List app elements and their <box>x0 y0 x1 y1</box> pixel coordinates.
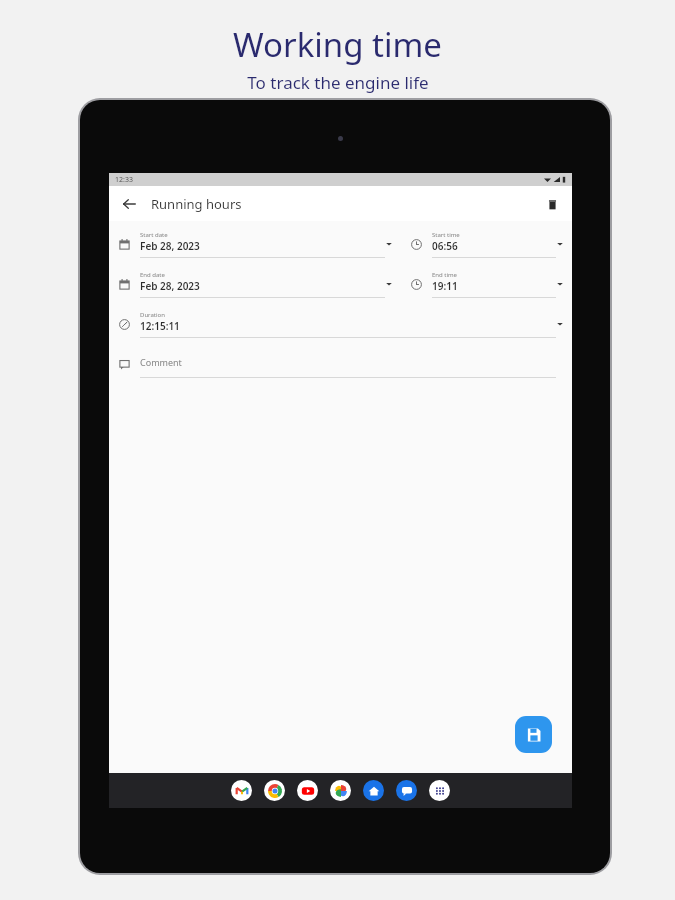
staticText: Duration <box>140 311 165 319</box>
button[interactable]: App 2 <box>297 780 318 801</box>
staticText: Feb 28, 2023 <box>140 279 200 293</box>
button[interactable]: End date <box>109 267 401 301</box>
button[interactable]: App 1 <box>264 780 285 801</box>
button[interactable]: Start time <box>401 227 572 261</box>
button[interactable]: End time <box>401 267 572 301</box>
button[interactable]: App 0 <box>231 780 252 801</box>
staticText: Comment <box>140 356 182 368</box>
staticText: Start date <box>140 231 168 239</box>
button[interactable]: Comment <box>109 347 572 381</box>
button[interactable]: Save <box>515 716 552 753</box>
staticText: Feb 28, 2023 <box>140 239 200 253</box>
staticText: 06:56 <box>432 239 458 253</box>
button[interactable]: App 6 <box>429 780 450 801</box>
button[interactable]: Start date <box>109 227 401 261</box>
staticText: 12:15:11 <box>140 319 180 333</box>
staticText: Running hours <box>151 195 242 213</box>
button[interactable]: Duration <box>109 307 572 341</box>
staticText: Working time <box>233 22 442 67</box>
button[interactable]: App 3 <box>330 780 351 801</box>
button[interactable]: Back <box>117 192 141 216</box>
staticText: End time <box>432 271 458 279</box>
staticText: To track the engine life <box>247 71 429 94</box>
staticText: Start time <box>432 231 460 239</box>
button[interactable]: App 5 <box>396 780 417 801</box>
button[interactable]: Delete <box>540 192 564 216</box>
button[interactable]: App 4 <box>363 780 384 801</box>
staticText: 12:33 <box>115 175 133 185</box>
staticText: End date <box>140 271 165 279</box>
staticText: 19:11 <box>432 279 458 293</box>
